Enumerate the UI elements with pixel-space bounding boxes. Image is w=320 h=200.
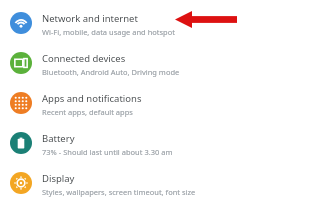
staticText: Bluetooth, Android Auto, Driving mode	[42, 67, 180, 77]
button[interactable]: Network and internet	[0, 0, 320, 52]
button[interactable]: Display	[0, 172, 320, 200]
staticText: Apps and notifications	[42, 92, 142, 105]
staticText: Styles, wallpapers, screen timeout, font…	[42, 187, 196, 197]
button[interactable]: Apps and notifications	[0, 92, 320, 132]
staticText: Display	[42, 172, 75, 185]
staticText: Network and internet	[42, 12, 138, 25]
staticText: Recent apps, default apps	[42, 107, 133, 117]
button[interactable]: Battery	[0, 132, 320, 172]
staticText: Connected devices	[42, 52, 126, 65]
staticText: 73% - Should last until about 3.30 am	[42, 147, 173, 157]
staticText: Wi-Fi, mobile, data usage and hotspot	[42, 27, 175, 37]
button[interactable]: Connected devices	[0, 52, 320, 92]
staticText: Battery	[42, 132, 75, 145]
